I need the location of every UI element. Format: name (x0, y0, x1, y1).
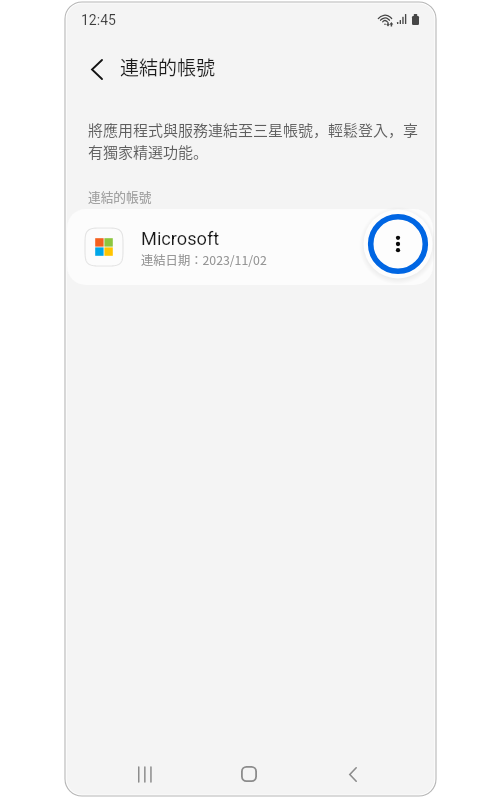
button[interactable]: Recents (121, 750, 169, 796)
staticText: 將應用程式與服務連結至三星帳號，輕鬆登入，享有獨家精選功能。 (88, 119, 424, 163)
button[interactable]: Microsoft (67, 209, 433, 285)
button[interactable]: Back (75, 47, 119, 91)
staticText: 連結日期：2023/11/02 (141, 251, 267, 269)
staticText: 連結的帳號 (120, 53, 216, 81)
staticText: 12:45 (81, 12, 116, 28)
button[interactable]: Back (329, 750, 377, 796)
staticText: 連結的帳號 (88, 187, 152, 205)
staticText: Microsoft (141, 228, 220, 249)
button[interactable]: More options (358, 204, 436, 284)
button[interactable]: Home (225, 750, 273, 796)
